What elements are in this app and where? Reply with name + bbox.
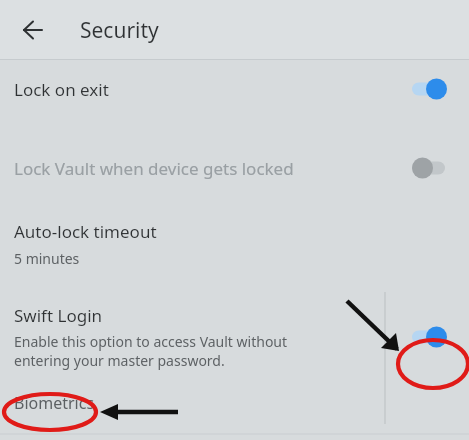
staticText: Lock Vault when device gets locked — [14, 157, 411, 180]
staticText: Auto-lock timeout — [14, 220, 157, 243]
button[interactable]: Swift Login toggle — [411, 322, 457, 352]
staticText: Lock on exit — [14, 78, 411, 101]
staticText: Biometrics — [14, 392, 95, 414]
staticText: Security — [80, 16, 159, 45]
button[interactable]: Lock Vault when device gets locked — [0, 146, 469, 190]
staticText: Swift Login — [14, 304, 103, 327]
button[interactable]: Lock Vault when device gets locked toggl… — [411, 153, 457, 183]
button[interactable]: Lock on exit — [0, 60, 469, 118]
button[interactable]: Lock on exit toggle — [411, 74, 457, 104]
button[interactable]: Biometrics — [0, 392, 469, 414]
button[interactable]: Back — [16, 13, 50, 47]
button[interactable]: Swift Login — [0, 304, 469, 370]
staticText: 5 minutes — [14, 249, 80, 268]
button[interactable]: Auto-lock timeout — [0, 216, 469, 274]
staticText: Enable this option to access Vault witho… — [14, 332, 288, 370]
